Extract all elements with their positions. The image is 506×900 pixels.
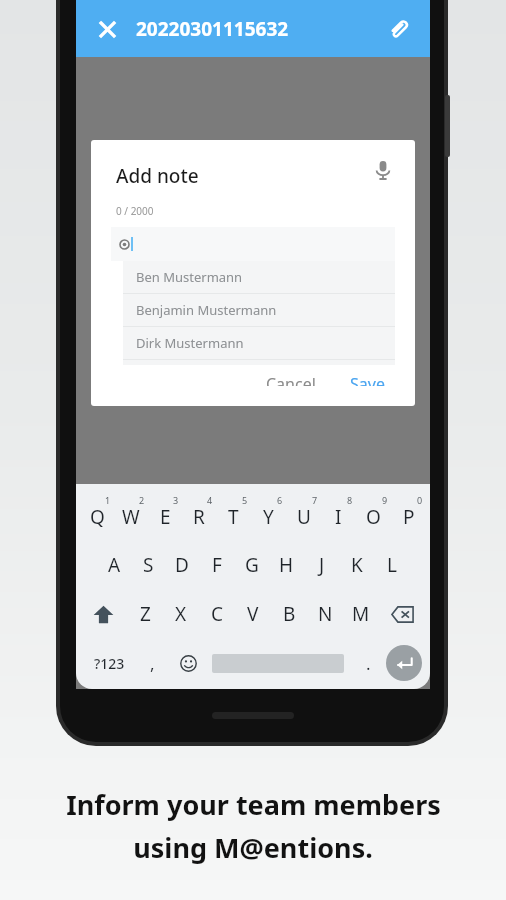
button[interactable]: X xyxy=(163,593,199,635)
staticText: X xyxy=(175,601,187,627)
button[interactable]: G xyxy=(234,545,269,585)
button[interactable]: Enter xyxy=(386,645,422,681)
button[interactable]: A xyxy=(97,545,131,585)
button[interactable]: V xyxy=(235,593,271,635)
staticText: Cancel xyxy=(266,373,316,386)
staticText: Y xyxy=(263,504,274,530)
staticText: 3 xyxy=(173,494,179,506)
staticText: E xyxy=(160,504,171,530)
button[interactable]: Y xyxy=(251,493,286,535)
staticText: Add note xyxy=(116,163,199,189)
button[interactable]: Space xyxy=(206,643,350,683)
button[interactable]: Voice input xyxy=(367,154,399,186)
button[interactable]: Benjamin Mustermann xyxy=(123,294,395,327)
staticText: Ben Mustermann xyxy=(136,268,243,286)
button[interactable]: Backspace xyxy=(379,593,426,635)
button[interactable]: Close xyxy=(90,12,124,46)
staticText: 4 xyxy=(207,494,213,506)
button[interactable]: Dirk Mustermann xyxy=(123,327,395,360)
staticText: using M@entions. xyxy=(133,829,373,866)
button[interactable]: Q xyxy=(80,493,114,535)
button[interactable]: Save xyxy=(342,365,393,394)
staticText: V xyxy=(247,601,259,627)
staticText: 5 xyxy=(242,494,248,506)
staticText: 0 / 2000 xyxy=(116,204,154,218)
staticText: 8 xyxy=(347,494,353,506)
button[interactable]: Cancel xyxy=(254,365,328,394)
button[interactable]: B xyxy=(271,593,307,635)
staticText: I xyxy=(335,504,342,530)
staticText: ?123 xyxy=(94,654,125,673)
button[interactable]: M xyxy=(343,593,379,635)
staticText: D xyxy=(175,552,189,578)
button[interactable]: P xyxy=(391,493,426,535)
staticText: 20220301115632 xyxy=(136,16,289,42)
button[interactable]: O xyxy=(356,493,391,535)
staticText: G xyxy=(245,552,259,578)
staticText: F xyxy=(212,552,222,578)
staticText: P xyxy=(403,504,415,530)
button[interactable]: . xyxy=(350,643,386,683)
staticText: S xyxy=(143,552,154,578)
staticText: C xyxy=(211,601,224,627)
button[interactable]: F xyxy=(199,545,234,585)
staticText: Benjamin Mustermann xyxy=(136,301,277,319)
staticText: B xyxy=(283,601,296,627)
button[interactable]: Attach xyxy=(380,11,416,47)
staticText: M xyxy=(352,601,370,627)
button[interactable]: S xyxy=(131,545,165,585)
button[interactable]: ?123 xyxy=(84,643,134,683)
staticText: K xyxy=(351,552,363,578)
button[interactable] xyxy=(111,227,395,261)
staticText: T xyxy=(228,504,239,530)
button[interactable]: I xyxy=(321,493,356,535)
button[interactable]: H xyxy=(269,545,304,585)
button[interactable]: R xyxy=(182,493,216,535)
staticText: 9 xyxy=(382,494,388,506)
staticText: N xyxy=(318,601,333,627)
button[interactable]: E xyxy=(148,493,182,535)
staticText: 0 xyxy=(417,494,423,506)
button[interactable]: Emoji xyxy=(170,643,206,683)
button[interactable]: W xyxy=(114,493,148,535)
staticText: U xyxy=(297,504,311,530)
button[interactable]: K xyxy=(339,545,374,585)
button[interactable]: Ben Mustermann xyxy=(123,261,395,294)
button[interactable]: L xyxy=(374,545,409,585)
button[interactable]: J xyxy=(304,545,339,585)
staticText: W xyxy=(122,504,140,530)
staticText: 6 xyxy=(277,494,283,506)
staticText: , xyxy=(150,652,155,675)
button[interactable]: T xyxy=(216,493,251,535)
button[interactable]: C xyxy=(199,593,235,635)
staticText: J xyxy=(319,552,325,578)
button[interactable]: N xyxy=(307,593,343,635)
staticText: H xyxy=(279,552,294,578)
staticText: L xyxy=(387,552,397,578)
button[interactable]: D xyxy=(165,545,199,585)
staticText: . xyxy=(366,652,371,675)
button[interactable]: Shift xyxy=(80,593,127,635)
staticText: O xyxy=(366,504,381,530)
staticText: 7 xyxy=(312,494,318,506)
staticText: R xyxy=(193,504,205,530)
staticText: Q xyxy=(90,504,105,530)
staticText: A xyxy=(108,552,121,578)
staticText: Z xyxy=(140,601,151,627)
staticText: Inform your team members xyxy=(66,786,441,823)
staticText: Save xyxy=(350,373,385,386)
button[interactable]: U xyxy=(286,493,321,535)
staticText: 1 xyxy=(105,494,111,506)
staticText: Dirk Mustermann xyxy=(136,334,244,352)
button[interactable]: , xyxy=(134,643,170,683)
button[interactable]: Z xyxy=(127,593,163,635)
staticText: 2 xyxy=(139,494,145,506)
